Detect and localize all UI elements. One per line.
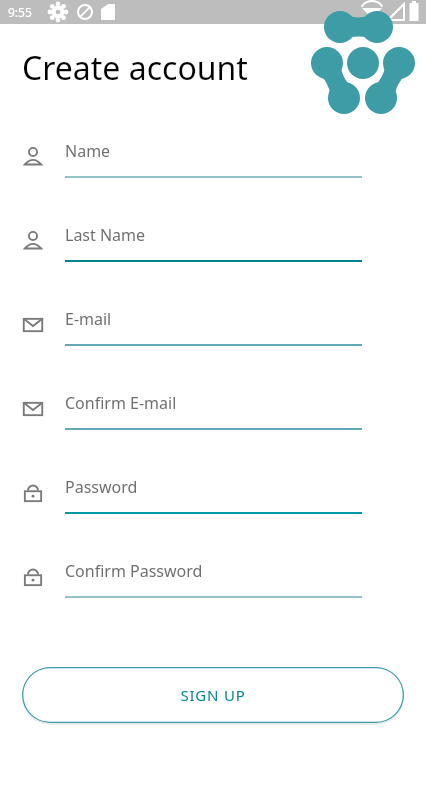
staticText: Password bbox=[65, 476, 138, 498]
staticText: Create account bbox=[22, 46, 248, 90]
staticText: Name bbox=[65, 140, 111, 162]
staticText: Confirm E-mail bbox=[65, 392, 177, 414]
staticText: Last Name bbox=[65, 224, 146, 246]
staticText: Confirm Password bbox=[65, 560, 203, 582]
button[interactable]: SIGN UP bbox=[22, 667, 404, 723]
button[interactable]: Confirm Password bbox=[0, 560, 426, 616]
button[interactable]: Confirm E-mail bbox=[0, 392, 426, 448]
staticText: SIGN UP bbox=[180, 685, 246, 705]
button[interactable]: Password bbox=[0, 476, 426, 532]
button[interactable]: E-mail bbox=[0, 308, 426, 364]
button[interactable]: Last Name bbox=[0, 224, 426, 280]
button[interactable]: Name bbox=[0, 140, 426, 196]
staticText: E-mail bbox=[65, 308, 112, 330]
staticText: 9:55 bbox=[8, 4, 32, 20]
